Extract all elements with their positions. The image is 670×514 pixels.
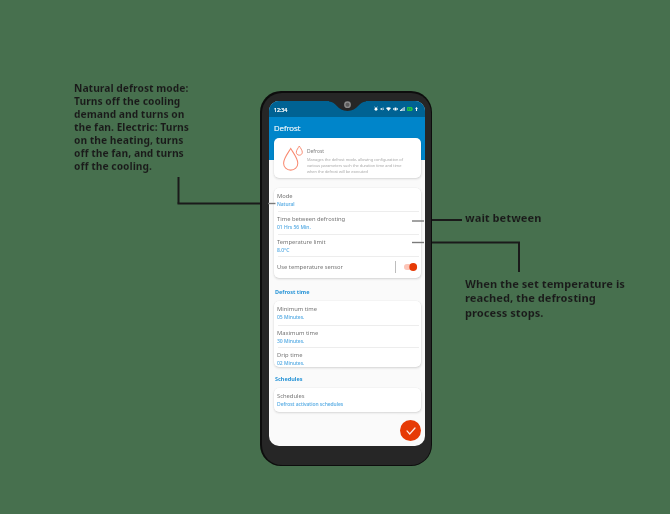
staticText: Use temperature sensor [277,263,343,271]
button[interactable]: Confirm [400,420,421,441]
staticText: Natural defrost mode: Turns off the cool… [74,81,192,173]
staticText: Manages the defrost mode, allowing confi… [307,157,410,175]
staticText: Time between defrosting [277,215,346,223]
staticText: wait between [465,210,542,225]
button[interactable]: Use temperature sensor [274,256,421,278]
staticText: 02 Minutes. [277,360,305,367]
button[interactable]: Temperature limit [274,234,421,257]
staticText: Defrost [274,123,301,134]
staticText: Minimum time [277,305,318,313]
staticText: 8.0°C [277,247,290,254]
button[interactable]: Time between defrosting [274,211,421,234]
staticText: Defrost time [275,288,310,295]
staticText: 12:34 [274,106,288,113]
button[interactable]: Maximum time [274,325,421,347]
staticText: Drip time [277,351,303,359]
staticText: 30 Minutes. [277,338,305,345]
staticText: Defrost activation schedules [277,401,344,408]
staticText: Schedules [277,392,305,400]
staticText: Mode [277,192,293,200]
staticText: 05 Minutes. [277,314,305,321]
staticText: Temperature limit [277,238,326,246]
staticText: 01 Hrs 56 Min. [277,224,311,231]
staticText: Defrost [307,148,324,155]
staticText: Natural [277,201,295,208]
button[interactable]: Mode [274,188,421,211]
staticText: When the set temperature is reached, the… [465,276,630,321]
button[interactable]: Drip time [274,347,421,367]
button[interactable]: Minimum time [274,301,421,325]
button[interactable]: Schedules [274,388,421,412]
staticText: Schedules [275,375,303,382]
staticText: Maximum time [277,329,319,337]
